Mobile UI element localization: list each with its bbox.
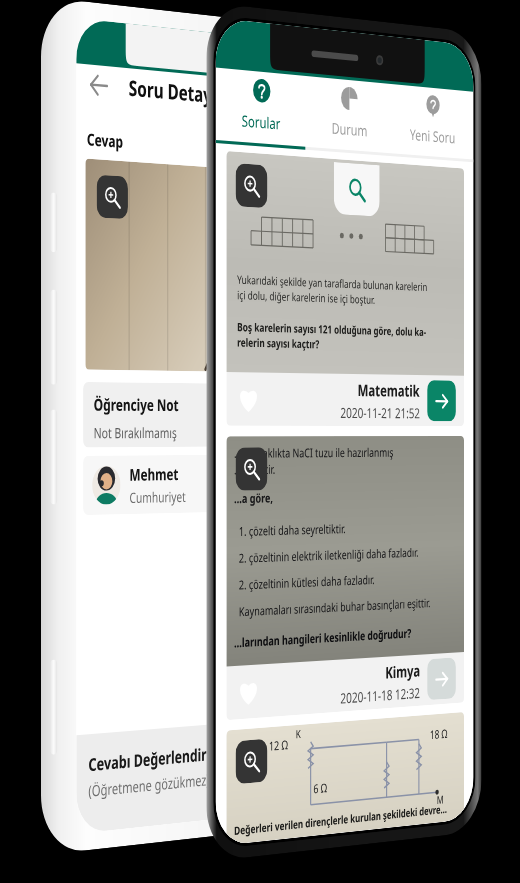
staticText: Cevap — [87, 128, 124, 153]
staticText: Öğrenciye Not — [94, 393, 179, 416]
staticText: Yeni Soru — [410, 124, 456, 147]
staticText: Durum — [332, 117, 368, 140]
staticText: 18 Ω — [430, 725, 448, 742]
staticText: Değerleri verilen dirençlerle kurulan şe… — [234, 801, 447, 838]
staticText: Not Bırakılmamış — [94, 423, 177, 442]
staticText: M — [437, 792, 444, 807]
staticText: K — [296, 726, 301, 741]
button[interactable]: Search — [334, 162, 380, 217]
button[interactable]: Zoom in — [97, 175, 128, 219]
staticText: Sorular — [242, 110, 281, 134]
button[interactable]: Open question — [427, 657, 456, 700]
staticText: …nı sıcaklıkta NaCI tuzu ile hazırlanmış — [234, 444, 394, 461]
staticText: …rilmiştir. — [234, 461, 276, 477]
staticText: Cevabı Değerlendir — [88, 743, 207, 776]
staticText: Soru Detayı — [129, 73, 217, 110]
staticText: relerin sayısı kaçtır? — [237, 334, 319, 351]
staticText: Boş karelerin sayısı 121 olduğuna göre, … — [237, 319, 426, 339]
staticText: Cumhuriyet — [129, 487, 186, 507]
button[interactable]: Favourite — [237, 676, 260, 708]
staticText: (Öğretmene gözükmez) — [88, 769, 210, 801]
staticText: 2. çözeltinin elektrik iletkenliği daha … — [234, 544, 419, 566]
button[interactable]: …nı sıcaklıkta NaCI tuzu ile hazırlanmış — [226, 436, 464, 720]
staticText: Matematik — [358, 379, 420, 402]
button[interactable]: Zoom in — [236, 739, 267, 784]
staticText: 2020-11-18 12:32 — [340, 683, 420, 708]
staticText: 12 Ω — [269, 736, 288, 754]
staticText: 6 Ω — [313, 779, 327, 796]
button[interactable]: Yeni Soru — [392, 80, 473, 159]
button[interactable]: Mehmet — [83, 454, 295, 515]
button[interactable]: Zoom in — [236, 447, 267, 491]
button[interactable]: Zoom in — [236, 163, 267, 208]
staticText: Mehmet — [129, 463, 179, 486]
staticText: Yukarıdaki şekilde yan taraflarda buluna… — [237, 271, 428, 294]
staticText: …larından hangileri kesinlikle doğrudur? — [234, 625, 412, 650]
staticText: Kaynamaları sırasındaki buhar basınçları… — [234, 594, 431, 620]
button[interactable]: Sorular — [216, 63, 306, 147]
button[interactable]: Favourite — [237, 384, 260, 415]
button[interactable]: Durum — [306, 72, 392, 153]
button[interactable]: Open question — [427, 380, 456, 421]
button[interactable]: Yukarıdaki şekilde yan taraflarda buluna… — [226, 151, 464, 426]
staticText: …a göre, — [234, 489, 273, 506]
button[interactable]: Back — [87, 68, 109, 101]
staticText: içi dolu, diğer karelerin ise içi boştur… — [237, 287, 375, 307]
button[interactable]: 12 Ω — [226, 712, 464, 845]
staticText: 1. çözelti daha seyreltiktir. — [234, 520, 346, 539]
staticText: 2020-11-21 21:52 — [340, 403, 420, 422]
staticText: Kimya — [385, 660, 420, 684]
staticText: 2. çözeltinin kütlesi daha fazladır. — [234, 571, 375, 593]
